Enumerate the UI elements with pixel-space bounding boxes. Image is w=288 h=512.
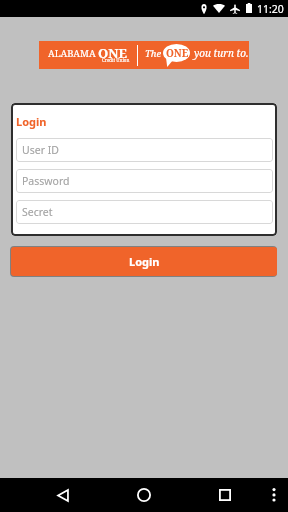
staticText: you turn to. — [194, 46, 249, 60]
button[interactable]: More options — [264, 478, 284, 512]
button[interactable]: Home — [127, 478, 160, 512]
staticText: The — [145, 47, 162, 60]
staticText: 11:20 — [257, 2, 284, 16]
button[interactable]: Secret — [16, 200, 273, 224]
staticText: ONE — [166, 46, 189, 60]
button[interactable]: Back — [46, 478, 79, 512]
staticText: Login — [129, 254, 160, 269]
staticText: Secret — [22, 205, 53, 219]
button[interactable]: Login — [11, 247, 277, 276]
button[interactable]: Recent apps — [208, 478, 241, 512]
staticText: Password — [22, 174, 70, 188]
staticText: ALABAMA — [48, 47, 96, 60]
button[interactable]: Password — [16, 169, 273, 193]
staticText: Credit Union — [102, 57, 130, 63]
button[interactable]: User ID — [16, 138, 273, 162]
staticText: User ID — [22, 143, 59, 157]
staticText: Login — [16, 114, 47, 129]
staticText: ONE — [98, 44, 127, 62]
